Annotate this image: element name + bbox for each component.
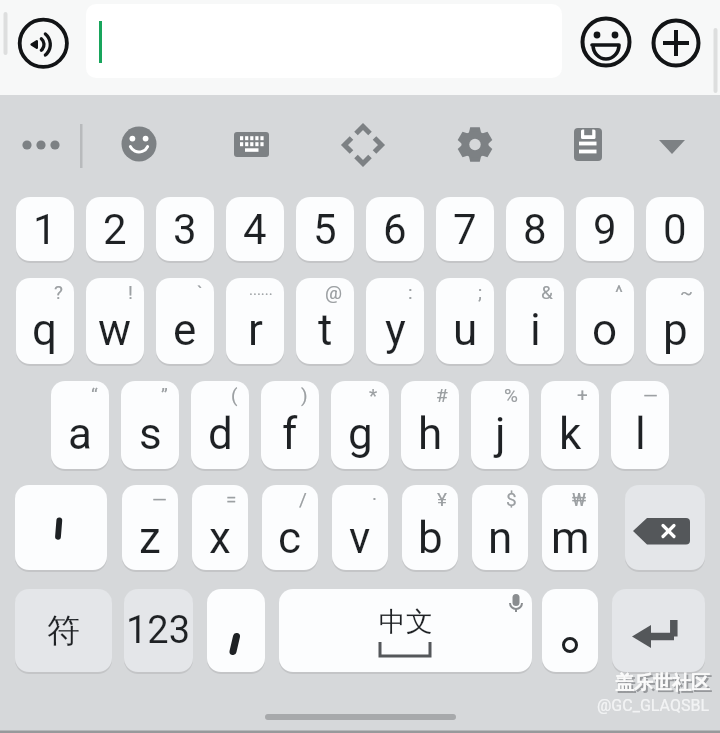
button[interactable]: ( [191,381,249,469]
button[interactable] [19,19,67,67]
button[interactable] [563,120,611,168]
button[interactable] [227,120,275,168]
button[interactable]: ? [16,278,74,364]
staticText: 7 [453,205,477,254]
staticText: g [348,408,373,460]
button[interactable]: ~ [646,278,704,364]
staticText: = [226,488,237,510]
button[interactable]: — [611,381,669,469]
staticText: c [278,512,302,564]
button[interactable] [625,485,705,570]
staticText: t [318,304,333,356]
staticText: 8 [523,205,547,254]
staticText: r [248,304,263,356]
staticText: ` [197,281,203,303]
button[interactable]: 0 [646,197,704,261]
staticText: 5 [313,205,337,254]
button[interactable]: : [366,278,424,364]
button[interactable] [648,123,696,167]
button[interactable]: 4 [226,197,284,261]
staticText: @ [325,281,343,303]
button[interactable]: # [401,381,459,469]
staticText: a [68,408,92,460]
button[interactable]: ; [436,278,494,364]
staticText: ( [231,384,238,406]
button[interactable]: 中文 [279,589,532,672]
staticText: e [173,304,197,356]
button[interactable] [542,589,598,672]
button[interactable]: $ [472,485,528,570]
button[interactable]: “ [51,381,109,469]
button[interactable] [339,121,387,169]
button[interactable]: / [262,485,318,570]
staticText: z [139,512,161,564]
staticText: 2 [103,205,127,254]
staticText: & [541,281,553,303]
staticText: 9 [593,205,617,254]
staticText: m [551,512,590,564]
staticText: ) [301,384,308,406]
button[interactable]: ) [261,381,319,469]
staticText: · [372,488,377,510]
staticText: / [299,488,307,510]
staticText: 盖乐世社区 [617,673,712,697]
staticText: ~ [680,281,693,303]
staticText: f [282,408,298,460]
staticText: “ [91,384,98,406]
button[interactable]: ` [156,278,214,364]
staticText: ; [478,281,483,303]
button[interactable]: ! [86,278,144,364]
staticText: 盖乐世社区 [615,671,710,695]
button[interactable]: 符 [15,589,112,672]
button[interactable] [86,4,562,78]
staticText: l [635,408,646,460]
staticText: 0 [663,205,687,254]
button[interactable] [17,121,65,169]
button[interactable]: — [122,485,178,570]
button[interactable]: · [332,485,388,570]
button[interactable] [15,485,107,570]
button[interactable] [265,710,456,724]
staticText: q [32,304,58,356]
button[interactable] [207,589,265,672]
button[interactable] [451,121,499,169]
staticText: — [643,384,658,406]
button[interactable] [582,18,630,66]
staticText: ₩ [572,488,587,510]
button[interactable]: % [471,381,529,469]
button[interactable]: 6 [366,197,424,261]
button[interactable]: 8 [506,197,564,261]
staticText: o [592,304,618,356]
button[interactable]: 5 [296,197,354,261]
button[interactable]: 123 [124,589,193,672]
button[interactable]: 7 [436,197,494,261]
button[interactable]: 1 [16,197,74,261]
button[interactable] [612,589,705,672]
button[interactable] [115,120,163,168]
staticText: s [139,408,162,460]
button[interactable]: 3 [156,197,214,261]
staticText: i [530,304,541,356]
button[interactable]: = [192,485,248,570]
staticText: 符 [47,610,80,652]
button[interactable]: ¥ [402,485,458,570]
button[interactable]: + [541,381,599,469]
button[interactable]: ₩ [542,485,598,570]
button[interactable]: * [331,381,389,469]
staticText: h [418,408,443,460]
staticText: ” [161,384,168,406]
button[interactable]: @ [296,278,354,364]
button[interactable]: ...... [226,278,284,364]
staticText: u [453,304,478,356]
staticText: ! [128,281,133,303]
button[interactable]: 2 [86,197,144,261]
button[interactable]: & [506,278,564,364]
button[interactable]: ^ [576,278,634,364]
staticText: + [577,384,588,406]
staticText: 1 [33,205,57,254]
button[interactable]: ” [121,381,179,469]
button[interactable]: 9 [576,197,634,261]
button[interactable] [652,19,700,67]
staticText: $ [506,488,517,510]
staticText: ¥ [437,488,447,510]
